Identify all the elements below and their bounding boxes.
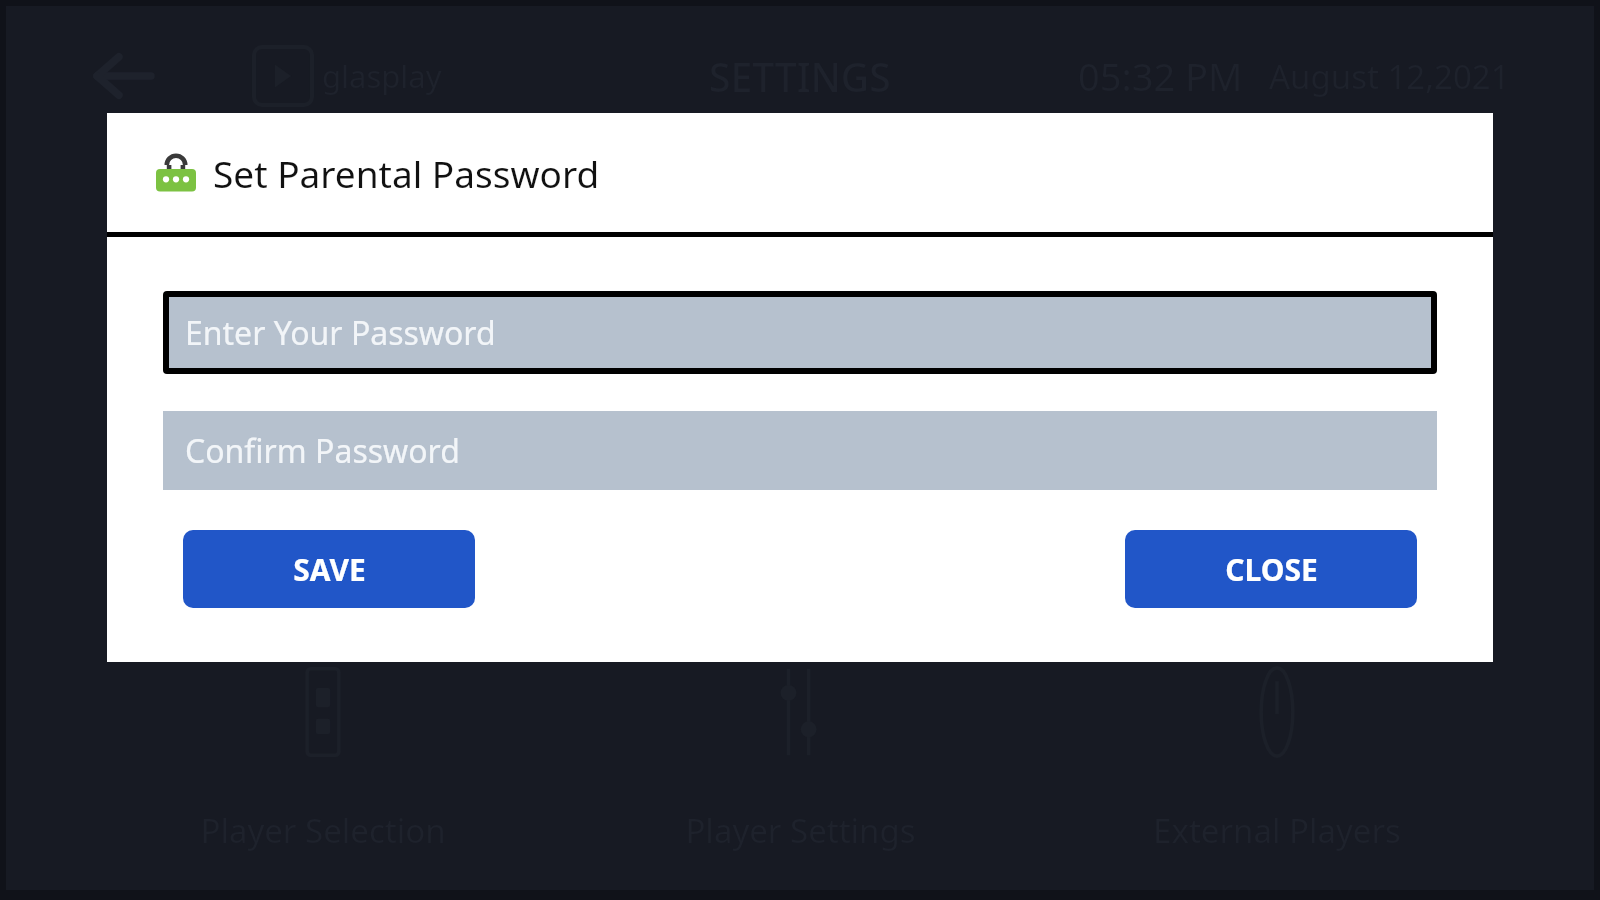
button[interactable]: SAVE [183, 530, 475, 608]
staticText: Confirm Password [185, 429, 460, 473]
staticText: Enter Your Password [185, 311, 496, 355]
button[interactable]: Enter Your Password [163, 291, 1437, 374]
other: Parental lock [156, 153, 196, 193]
staticText: SAVE [293, 549, 366, 590]
button[interactable]: Back [92, 44, 156, 108]
staticText: SETTINGS [709, 50, 891, 103]
button[interactable]: CLOSE [1125, 530, 1417, 608]
button[interactable]: Player Selection [163, 656, 483, 861]
button[interactable]: External Players [1117, 656, 1437, 861]
staticText: CLOSE [1225, 549, 1318, 590]
staticText: Set Parental Password [213, 148, 600, 198]
button[interactable]: Player Settings [640, 656, 960, 861]
button[interactable]: Confirm Password [163, 411, 1437, 490]
